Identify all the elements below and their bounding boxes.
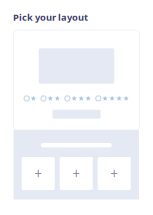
button[interactable]: Add block bbox=[22, 157, 55, 190]
button[interactable]: 4 star rating option bbox=[96, 95, 129, 101]
button[interactable]: Add block bbox=[98, 157, 131, 190]
button[interactable]: 3 star rating option bbox=[65, 95, 91, 101]
button[interactable]: 1 star rating option bbox=[24, 95, 36, 101]
staticText: Pick your layout bbox=[13, 11, 88, 23]
button[interactable]: Add block bbox=[60, 157, 93, 190]
button[interactable]: 2 star rating option bbox=[41, 95, 60, 101]
